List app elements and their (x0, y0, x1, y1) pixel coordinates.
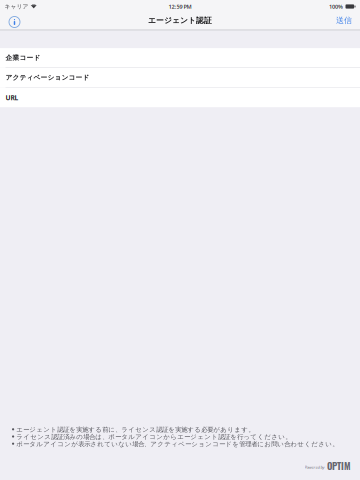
button[interactable]: Information (1, 13, 28, 29)
button[interactable]: URL (0, 88, 360, 107)
staticText: 12:59 PM (168, 3, 191, 10)
staticText: URL (5, 93, 18, 102)
staticText: エージェント認証 (148, 16, 212, 25)
staticText: Powered by (304, 464, 324, 470)
button[interactable]: アクティベーションコード (0, 68, 360, 87)
staticText: 100% (329, 3, 343, 10)
staticText: 企業コード (5, 54, 40, 62)
staticText: OPTIM (327, 459, 351, 473)
button[interactable]: 企業コード (0, 48, 360, 67)
staticText: エージェント認証を実施する前に、ライセンス認証を実施する必要があります。 (16, 426, 254, 434)
staticText: ライセンス認証済みの場合は、ポータルアイコンからエージェント認証を行ってください… (16, 433, 291, 441)
staticText: ポータルアイコンが表示されていない場合、アクティベーションコードを管理者にお問い… (16, 440, 338, 448)
staticText: アクティベーションコード (5, 73, 89, 82)
button[interactable]: 送信 (331, 13, 359, 29)
staticText: キャリア (4, 3, 28, 10)
staticText: 送信 (336, 15, 352, 25)
